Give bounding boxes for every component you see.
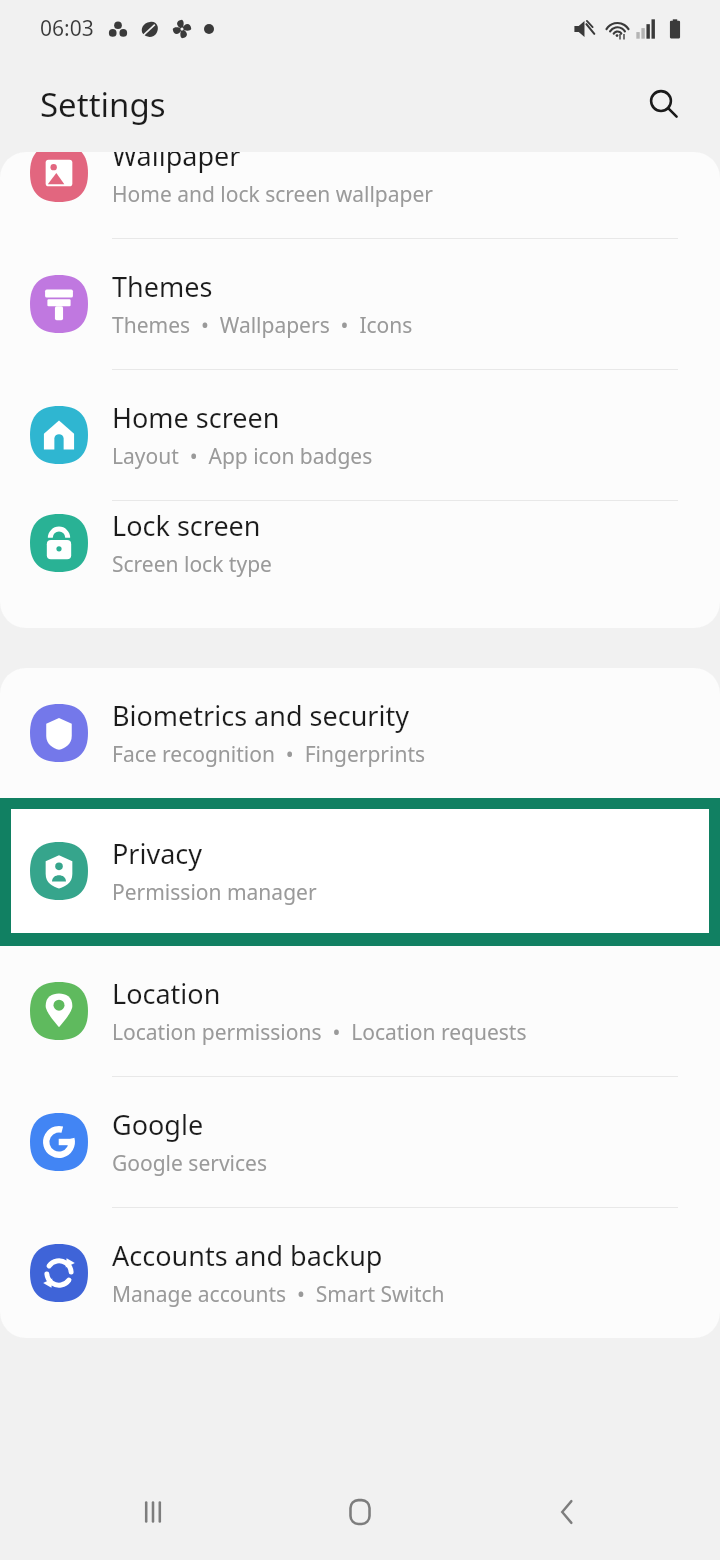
staticText: Layout • App icon badges <box>112 442 373 471</box>
staticText: Screen lock type <box>112 550 272 579</box>
staticText: 06:03 <box>40 14 94 43</box>
staticText: Home screen <box>112 399 280 436</box>
button[interactable]: Themes <box>0 239 720 369</box>
button[interactable]: Back <box>513 1464 623 1560</box>
staticText: Biometrics and security <box>112 697 409 734</box>
button[interactable]: Biometrics and security <box>0 668 720 798</box>
staticText: Google <box>112 1106 204 1143</box>
button[interactable]: Privacy <box>0 798 720 946</box>
button[interactable]: Google <box>0 1077 720 1207</box>
staticText: Lock screen <box>112 507 261 544</box>
staticText: Face recognition • Fingerprints <box>112 740 426 769</box>
staticText: Privacy <box>112 835 203 872</box>
button[interactable]: Accounts and backup <box>0 1208 720 1338</box>
button[interactable]: Search <box>636 76 692 132</box>
staticText: Settings <box>40 82 166 127</box>
button[interactable]: Lock screen <box>0 501 720 584</box>
button[interactable]: Location <box>0 946 720 1076</box>
staticText: Manage accounts • Smart Switch <box>112 1280 445 1309</box>
staticText: Wallpaper <box>112 152 241 174</box>
button[interactable]: Home screen <box>0 370 720 500</box>
staticText: Permission manager <box>112 878 317 907</box>
button[interactable]: Recents <box>98 1464 208 1560</box>
button[interactable]: Wallpaper <box>0 152 720 238</box>
staticText: Google services <box>112 1149 267 1178</box>
staticText: Themes <box>112 268 213 305</box>
staticText: Home and lock screen wallpaper <box>112 180 433 209</box>
staticText: Accounts and backup <box>112 1237 383 1274</box>
button[interactable]: Home <box>305 1464 415 1560</box>
staticText: Themes • Wallpapers • Icons <box>112 311 413 340</box>
staticText: Location permissions • Location requests <box>112 1018 527 1047</box>
staticText: Location <box>112 975 221 1012</box>
